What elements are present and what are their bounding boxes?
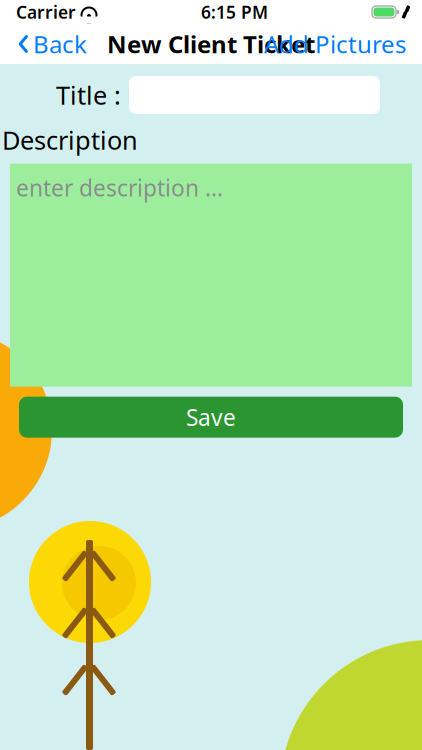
button[interactable]: Back: [6, 22, 99, 66]
staticText: Save: [186, 402, 236, 432]
staticText: Title :: [56, 78, 121, 112]
staticText: Back: [33, 28, 87, 60]
staticText: 6:15 PM: [201, 0, 268, 23]
button[interactable]: Save: [19, 397, 403, 438]
staticText: Add Pictures: [264, 28, 406, 60]
button[interactable]: enter description ...: [10, 164, 412, 387]
button[interactable]: Add Pictures: [254, 22, 416, 66]
staticText: New Client Ticket: [107, 28, 315, 60]
staticText: Description: [2, 123, 138, 157]
staticText: Carrier: [16, 0, 76, 23]
staticText: enter description ...: [16, 173, 223, 203]
